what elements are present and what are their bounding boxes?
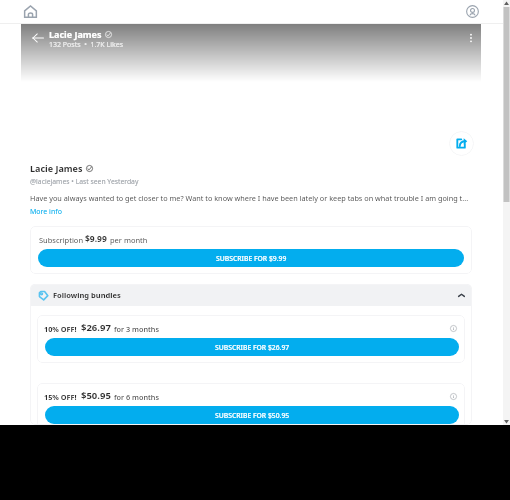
- staticText: Following bundles: [53, 290, 121, 300]
- staticText: 10% OFF!: [44, 324, 77, 334]
- staticText: Subscription: [39, 235, 85, 245]
- staticText: Have you always wanted to get closer to …: [30, 193, 478, 203]
- button[interactable]: Following bundles: [30, 284, 472, 306]
- button[interactable]: Back: [32, 32, 44, 44]
- staticText: SUBSCRIBE FOR $50.95: [215, 411, 290, 420]
- staticText: $9.99: [85, 233, 110, 245]
- staticText: SUBSCRIBE FOR $26.97: [215, 343, 290, 352]
- staticText: SUBSCRIBE FOR $9.99: [216, 254, 287, 263]
- staticText: Lacie James: [49, 28, 102, 40]
- staticText: @laciejames • Last seen Yesterday: [30, 177, 139, 186]
- staticText: $50.95: [81, 389, 111, 402]
- button[interactable]: Home: [24, 5, 37, 18]
- staticText: $26.97: [81, 321, 111, 334]
- staticText: for 3 months: [114, 324, 159, 334]
- button[interactable]: SUBSCRIBE FOR $26.97: [45, 338, 459, 356]
- staticText: for 6 months: [114, 392, 159, 402]
- button[interactable]: Share: [449, 131, 474, 156]
- button[interactable]: Account: [466, 5, 479, 18]
- button[interactable]: Info: [446, 321, 460, 335]
- button[interactable]: Info: [446, 389, 460, 403]
- button[interactable]: More info: [30, 207, 62, 217]
- button[interactable]: More options: [465, 32, 477, 44]
- staticText: Lacie James: [30, 162, 83, 174]
- button[interactable]: SUBSCRIBE FOR $50.95: [45, 406, 459, 424]
- staticText: 15% OFF!: [44, 392, 77, 402]
- staticText: per month: [110, 235, 148, 245]
- button[interactable]: SUBSCRIBE FOR $9.99: [38, 249, 464, 267]
- staticText: 132 Posts • 1.7K Likes: [49, 40, 123, 50]
